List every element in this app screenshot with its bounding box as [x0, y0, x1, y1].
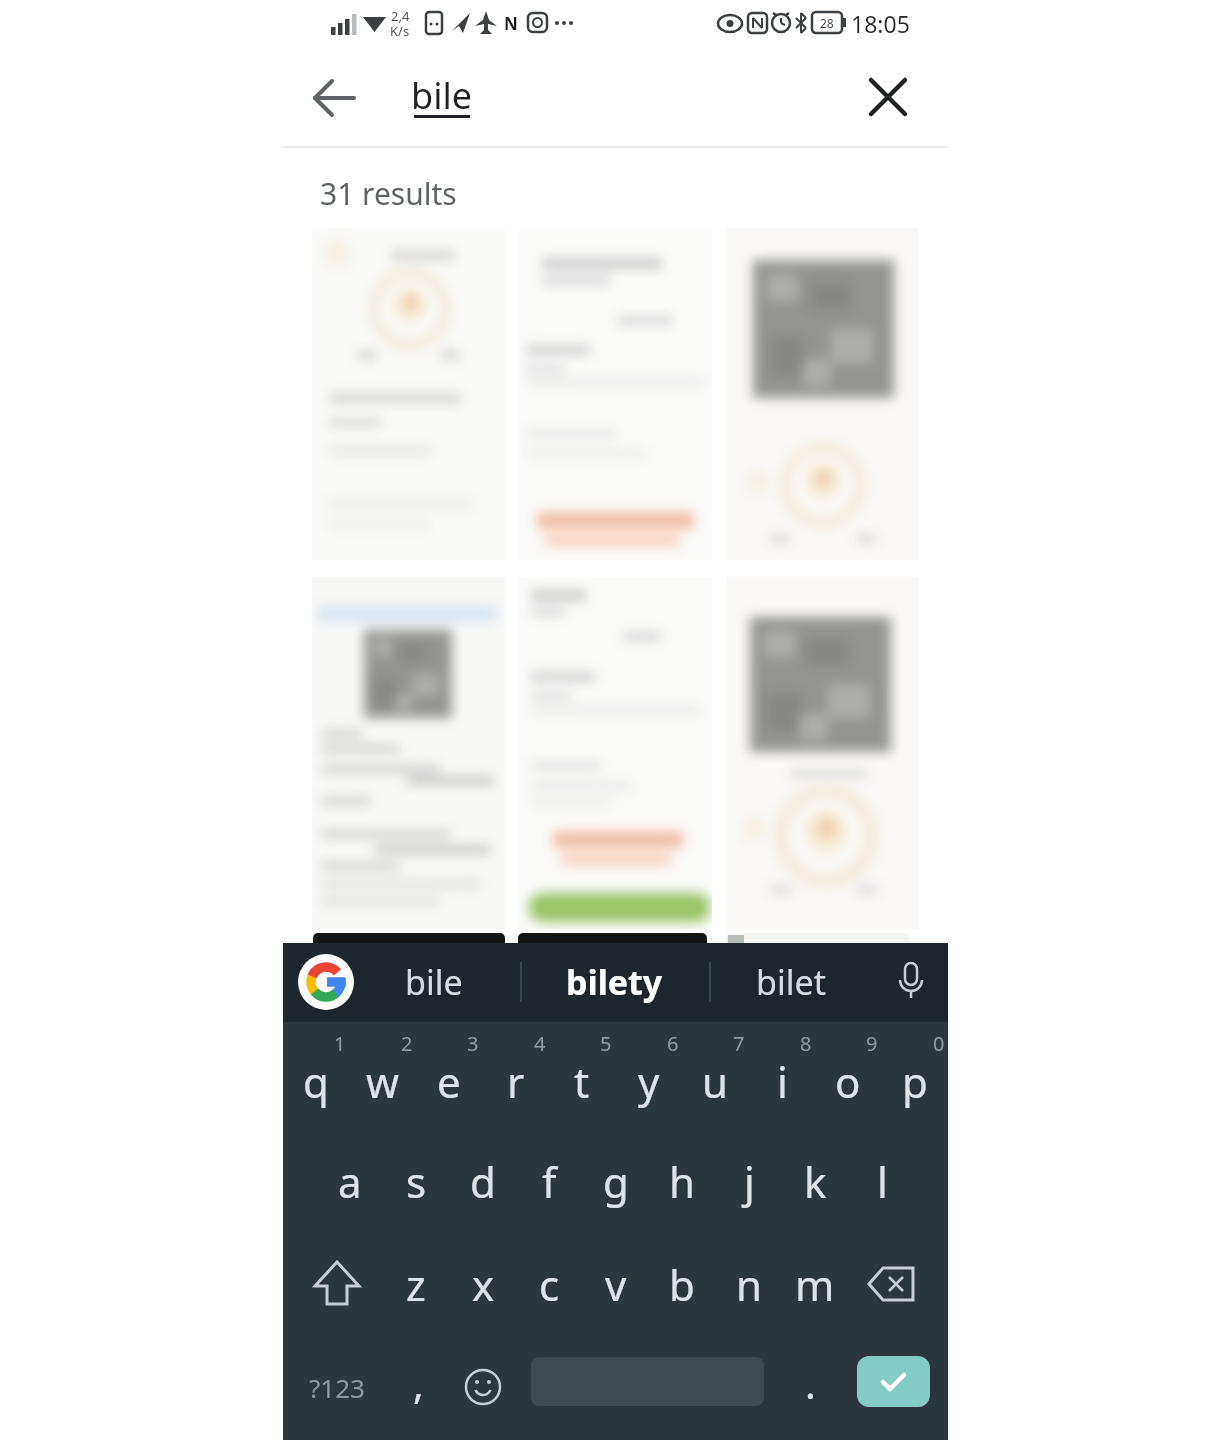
- button[interactable]: z: [383, 1234, 449, 1334]
- button[interactable]: u: [682, 1031, 748, 1131]
- button[interactable]: [287, 1234, 387, 1334]
- staticText: bile: [405, 959, 463, 1005]
- staticText: bilet: [756, 959, 826, 1005]
- staticText: s: [406, 1153, 427, 1210]
- staticText: 4: [534, 1030, 546, 1057]
- staticText: N: [504, 12, 518, 35]
- button[interactable]: bile: [354, 944, 514, 1020]
- staticText: t: [574, 1053, 590, 1110]
- staticText: p: [902, 1053, 928, 1110]
- button[interactable]: [298, 954, 354, 1010]
- button[interactable]: p: [882, 1031, 948, 1131]
- button[interactable]: f: [516, 1131, 582, 1231]
- staticText: g: [603, 1153, 629, 1210]
- button[interactable]: [857, 1356, 930, 1407]
- staticText: 31 results: [320, 173, 457, 214]
- staticText: 3: [467, 1030, 479, 1057]
- staticText: i: [777, 1053, 788, 1110]
- staticText: e: [437, 1053, 461, 1110]
- button[interactable]: e: [416, 1031, 482, 1131]
- staticText: x: [472, 1256, 495, 1313]
- button[interactable]: [312, 228, 505, 560]
- staticText: b: [669, 1256, 695, 1313]
- button[interactable]: [726, 577, 919, 930]
- staticText: r: [507, 1053, 525, 1110]
- button[interactable]: bilety: [529, 944, 699, 1020]
- staticText: f: [542, 1153, 557, 1210]
- staticText: 2,4: [391, 7, 410, 23]
- button[interactable]: [448, 1352, 518, 1422]
- staticText: n: [736, 1256, 762, 1313]
- staticText: a: [338, 1153, 362, 1210]
- staticText: u: [702, 1053, 728, 1110]
- staticText: bile: [411, 71, 473, 120]
- button[interactable]: [841, 1234, 941, 1334]
- button[interactable]: j: [716, 1131, 782, 1231]
- staticText: l: [877, 1153, 888, 1210]
- staticText: 1: [334, 1030, 346, 1057]
- button[interactable]: l: [849, 1131, 915, 1231]
- button[interactable]: ,: [388, 1338, 448, 1428]
- staticText: m: [795, 1256, 835, 1313]
- staticText: 7: [733, 1030, 745, 1057]
- button[interactable]: s: [383, 1131, 449, 1231]
- button[interactable]: [519, 228, 712, 560]
- staticText: 5: [600, 1030, 612, 1057]
- staticText: z: [406, 1256, 426, 1313]
- staticText: o: [835, 1053, 861, 1110]
- button[interactable]: r: [483, 1031, 549, 1131]
- button[interactable]: h: [649, 1131, 715, 1231]
- button[interactable]: q: [283, 1031, 349, 1131]
- staticText: bilety: [566, 959, 663, 1005]
- staticText: ?123: [309, 1370, 365, 1405]
- staticText: h: [669, 1153, 695, 1210]
- staticText: y: [638, 1053, 660, 1110]
- button[interactable]: n: [716, 1234, 782, 1334]
- button[interactable]: [312, 577, 505, 930]
- staticText: 9: [866, 1030, 878, 1057]
- button[interactable]: g: [583, 1131, 649, 1231]
- staticText: 2: [401, 1030, 413, 1057]
- button[interactable]: c: [516, 1234, 582, 1334]
- staticText: 0: [933, 1030, 945, 1057]
- staticText: K/s: [390, 22, 410, 38]
- button[interactable]: b: [649, 1234, 715, 1334]
- button[interactable]: i: [749, 1031, 815, 1131]
- button[interactable]: m: [782, 1234, 848, 1334]
- staticText: .: [805, 1356, 816, 1410]
- button[interactable]: [519, 577, 712, 930]
- button[interactable]: x: [450, 1234, 516, 1334]
- staticText: 18:05: [851, 8, 910, 38]
- button[interactable]: [726, 228, 919, 560]
- button[interactable]: ?123: [292, 1342, 382, 1432]
- staticText: j: [744, 1153, 755, 1210]
- button[interactable]: w: [350, 1031, 416, 1131]
- button[interactable]: .: [780, 1338, 840, 1428]
- button[interactable]: o: [815, 1031, 881, 1131]
- staticText: 6: [667, 1030, 679, 1057]
- staticText: w: [366, 1053, 400, 1110]
- button[interactable]: [310, 73, 360, 123]
- button[interactable]: d: [450, 1131, 516, 1231]
- staticText: 28: [820, 15, 834, 31]
- staticText: c: [539, 1256, 560, 1313]
- staticText: k: [804, 1153, 827, 1210]
- button[interactable]: [885, 956, 937, 1008]
- staticText: q: [303, 1053, 329, 1110]
- staticText: 8: [800, 1030, 812, 1057]
- button[interactable]: v: [583, 1234, 649, 1334]
- button[interactable]: t: [549, 1031, 615, 1131]
- staticText: d: [470, 1153, 496, 1210]
- button[interactable]: [867, 76, 909, 118]
- button[interactable]: a: [317, 1131, 383, 1231]
- button[interactable]: y: [616, 1031, 682, 1131]
- button[interactable]: k: [782, 1131, 848, 1231]
- button[interactable]: bilet: [711, 944, 871, 1020]
- staticText: v: [605, 1256, 627, 1313]
- staticText: ,: [413, 1356, 424, 1410]
